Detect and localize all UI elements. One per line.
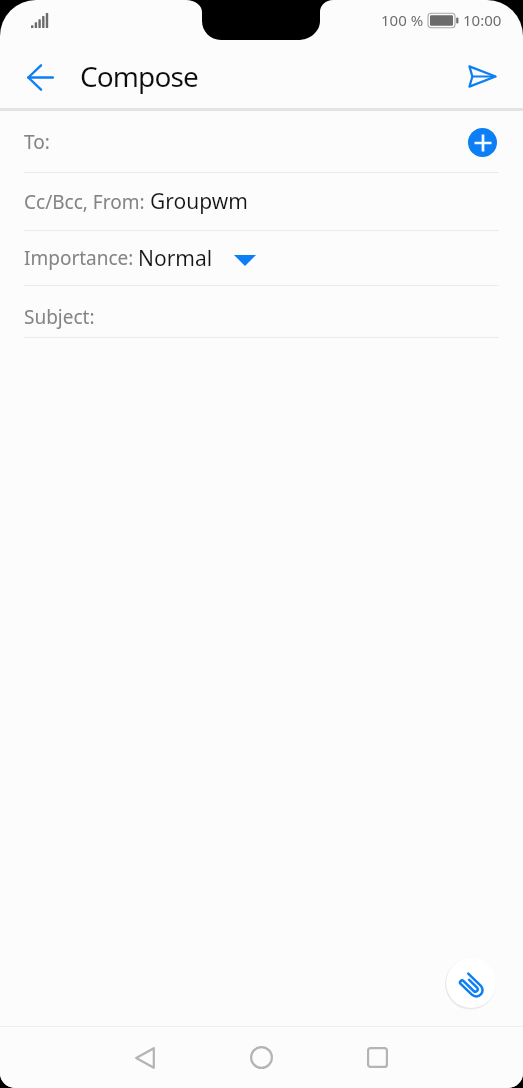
staticText: Cc/Bcc, From:: [24, 189, 145, 215]
staticText: To:: [24, 129, 50, 155]
staticText: Normal: [138, 244, 213, 273]
staticText: Subject:: [24, 304, 95, 330]
button[interactable]: Back: [0, 40, 80, 108]
button[interactable]: Recents: [342, 1027, 412, 1088]
button[interactable]: Send: [462, 40, 523, 108]
button[interactable]: Change importance: [228, 245, 262, 275]
staticText: 10:00: [463, 10, 502, 30]
button[interactable]: Attach file: [446, 958, 496, 1008]
staticText: Compose: [80, 57, 198, 95]
button[interactable]: Back: [110, 1027, 180, 1088]
staticText: 100 %: [381, 10, 424, 30]
button[interactable]: Add recipient: [468, 128, 497, 157]
staticText: Groupwm: [150, 187, 248, 216]
staticText: Importance:: [24, 245, 134, 271]
button[interactable]: Home: [226, 1027, 296, 1088]
